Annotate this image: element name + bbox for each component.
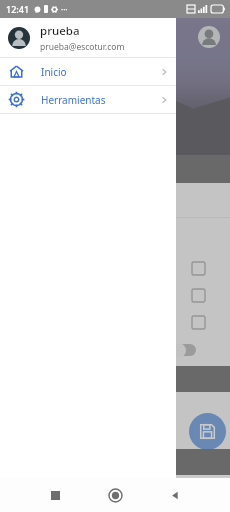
staticText: Itinerario	[12, 100, 82, 122]
button[interactable]: Recientes	[42, 482, 68, 508]
staticText: 12:41	[6, 3, 30, 15]
staticText: Herramientas	[41, 93, 106, 107]
button[interactable]: Opción	[0, 255, 230, 282]
button[interactable]: Inicio	[0, 58, 176, 85]
button[interactable]: Opción	[0, 309, 230, 336]
button[interactable]: Perfil	[198, 26, 220, 48]
button[interactable]: Inicio	[102, 482, 128, 508]
button[interactable]: prueba	[0, 18, 176, 57]
button[interactable]: Opción	[0, 282, 230, 309]
staticText: Inicio	[41, 65, 67, 79]
staticText: ···	[61, 4, 68, 15]
staticText: prueba	[40, 23, 80, 39]
button[interactable]: Herramientas	[0, 86, 176, 113]
staticText: prueba@escotur.com	[40, 41, 125, 53]
button[interactable]: Atrás	[162, 482, 188, 508]
button[interactable]	[0, 336, 230, 364]
button[interactable]: Guardar	[189, 413, 226, 450]
